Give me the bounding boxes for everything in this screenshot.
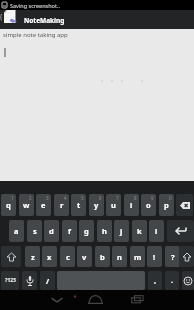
button[interactable]: g [79,220,94,242]
staticText: p [164,200,169,210]
button[interactable]: m [130,246,145,267]
staticText: 0 [169,195,172,201]
button[interactable] [0,10,194,29]
staticText: f [68,226,71,236]
button[interactable]: f [62,220,77,242]
button[interactable]: j [114,220,129,242]
staticText: ? [171,252,175,262]
button[interactable]: d [44,220,59,242]
button[interactable]: , [148,271,162,290]
staticText: l [155,226,158,236]
staticText: 5 [81,195,84,201]
button[interactable] [22,271,37,290]
button[interactable] [179,246,194,267]
staticText: Saving screenshot.. [10,2,60,9]
staticText: r [60,200,64,210]
staticText: q [6,200,11,210]
button[interactable] [47,292,67,308]
staticText: 3 [46,195,49,201]
staticText: 1 [11,195,14,201]
button[interactable]: h [97,220,112,242]
button[interactable]: q [1,194,16,216]
button[interactable]: x [42,246,57,267]
staticText: 9 [151,195,154,201]
button[interactable] [0,29,194,181]
button[interactable]: ? [165,246,180,267]
button[interactable]: . [165,271,179,290]
staticText: v [82,252,87,262]
staticText: , [154,275,157,285]
staticText: o [146,200,151,210]
staticText: g [84,226,89,236]
staticText: d [49,226,54,236]
staticText: 7 [116,195,119,201]
staticText: m [134,252,142,262]
button[interactable]: n [112,246,127,267]
staticText: e [41,200,46,210]
button[interactable]: t [71,194,86,216]
button[interactable]: c [60,246,75,267]
button[interactable]: i [124,194,139,216]
button[interactable]: y [89,194,104,216]
button[interactable]: a [9,220,24,242]
button[interactable]: z [25,246,40,267]
staticText: 8 [134,195,137,201]
button[interactable] [86,291,104,307]
staticText: i [130,200,133,210]
staticText: b [100,252,105,262]
button[interactable]: u [106,194,121,216]
button[interactable]: o [141,194,156,216]
staticText: NoteMaking [24,16,65,25]
button[interactable]: ?123 [1,271,19,290]
button[interactable]: w [19,194,34,216]
staticText: 2 [29,195,32,201]
staticText: y [94,200,99,210]
staticText: . [171,275,174,285]
staticText: x [47,252,52,262]
staticText: a [14,226,19,236]
staticText: k [137,226,142,236]
button[interactable]: b [95,246,110,267]
staticText: ! [153,252,156,262]
button[interactable]: ! [147,246,162,267]
button[interactable] [1,246,21,267]
staticText: u [111,200,116,210]
button[interactable]: / [40,271,55,290]
button[interactable]: r [54,194,69,216]
staticText: 4 [64,195,67,201]
staticText: simple note taking app [3,31,68,39]
button[interactable] [182,271,194,290]
button[interactable] [176,194,193,216]
button[interactable]: v [77,246,92,267]
button[interactable]: s [27,220,42,242]
button[interactable] [167,220,194,242]
button[interactable]: k [132,220,147,242]
staticText: ?123 [5,277,16,284]
staticText: h [102,226,107,236]
button[interactable]: l [149,220,164,242]
staticText: w [23,200,30,210]
staticText: t [77,200,81,210]
staticText: n [117,252,122,262]
staticText: s [33,226,37,236]
button[interactable]: p [159,194,174,216]
staticText: / [46,276,50,286]
staticText: z [31,252,35,262]
staticText: c [66,252,70,262]
staticText: j [120,226,123,236]
button[interactable]: e [36,194,51,216]
staticText: 6 [99,195,102,201]
button[interactable] [128,291,146,307]
